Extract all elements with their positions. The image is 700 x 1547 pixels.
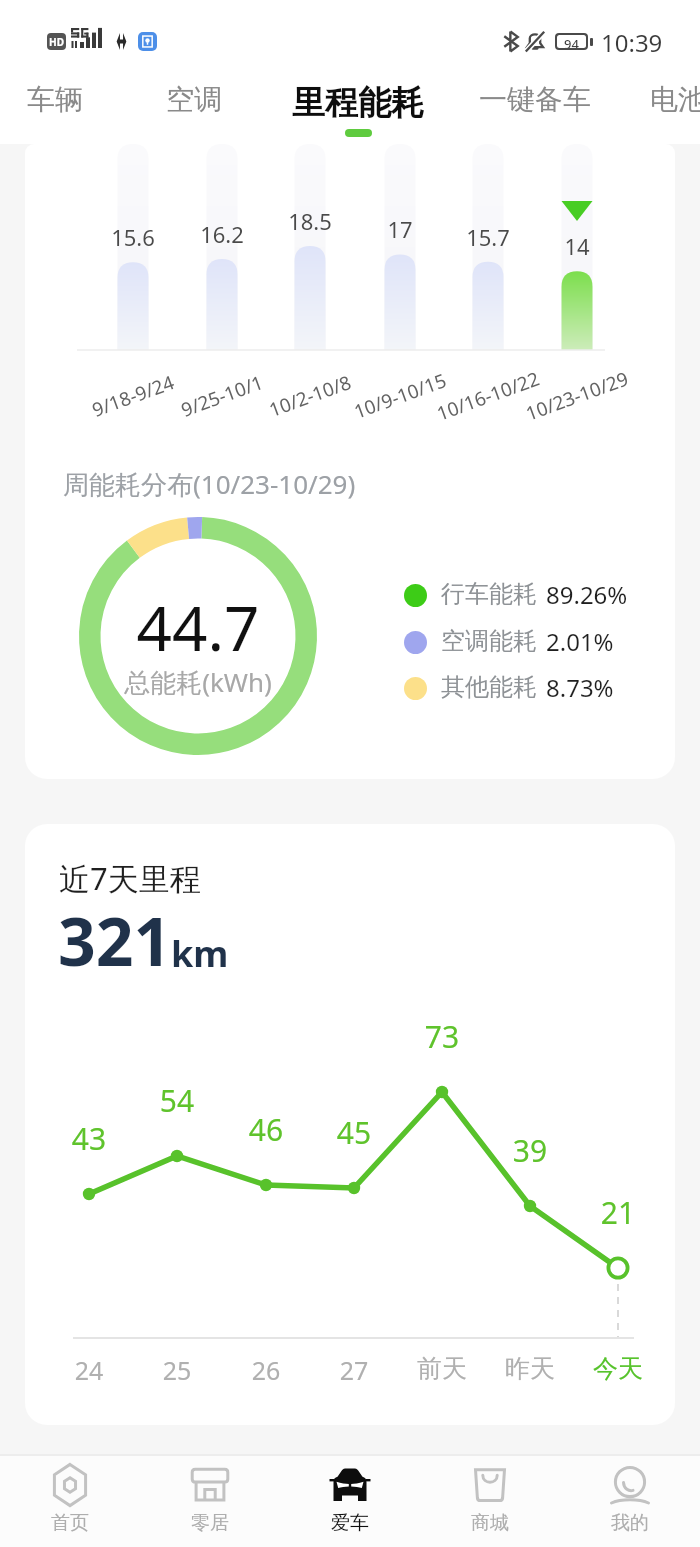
staticText: 电池 (650, 82, 700, 117)
staticText: 8.73% (546, 671, 614, 704)
staticText: 我的 (611, 1511, 649, 1535)
staticText: 行车能耗 (441, 579, 537, 609)
staticText: 近7天里程 (59, 857, 201, 899)
staticText: 94 (564, 35, 579, 48)
staticText: 14 (527, 231, 627, 261)
button[interactable]: Store (140, 1456, 280, 1547)
staticText: 昨天 (480, 1353, 580, 1384)
staticText: 321 (58, 895, 172, 985)
staticText: 总能耗(kWh) (98, 664, 298, 700)
staticText: 43 (39, 1118, 139, 1159)
button[interactable]: 车辆 (0, 78, 117, 144)
staticText: 25 (127, 1353, 227, 1387)
staticText: 10:39 (601, 26, 663, 59)
staticText: 26 (216, 1353, 316, 1387)
button[interactable]: 电池 (616, 78, 700, 144)
staticText: 零居 (191, 1511, 229, 1535)
staticText: 10/23-10/29 (507, 360, 647, 432)
staticText: 9/18-9/24 (63, 360, 203, 432)
staticText: 15.7 (438, 222, 538, 252)
button[interactable]: 里程能耗 (280, 78, 436, 144)
staticText: 21 (568, 1192, 668, 1233)
button[interactable]: 空调 (132, 78, 256, 144)
staticText: 73 (392, 1016, 492, 1057)
staticText: 15.6 (83, 222, 183, 252)
staticText: 爱车 (331, 1511, 369, 1535)
staticText: 54 (127, 1080, 227, 1121)
staticText: 空调能耗 (441, 626, 537, 656)
staticText: 商城 (471, 1511, 509, 1535)
staticText: 10/16-10/22 (418, 360, 558, 432)
staticText: 10/9-10/15 (330, 360, 470, 432)
button[interactable]: Mall (420, 1456, 560, 1547)
staticText: 周能耗分布(10/23-10/29) (63, 466, 356, 502)
staticText: km (171, 929, 229, 978)
staticText: 18.5 (260, 206, 360, 236)
staticText: 16.2 (172, 219, 272, 249)
staticText: 9/25-10/1 (152, 360, 292, 432)
button[interactable]: Home (0, 1456, 140, 1547)
button[interactable]: 一键备车 (473, 78, 597, 144)
staticText: 24 (39, 1353, 139, 1387)
staticText: 17 (350, 214, 450, 244)
staticText: 45 (304, 1112, 404, 1153)
staticText: 一键备车 (479, 82, 591, 117)
staticText: 27 (304, 1353, 404, 1387)
staticText: 空调 (166, 82, 222, 117)
staticText: 里程能耗 (292, 82, 424, 124)
staticText: 首页 (51, 1511, 89, 1535)
staticText: 39 (480, 1130, 580, 1171)
staticText: 2.01% (546, 625, 614, 658)
staticText: 车辆 (27, 82, 83, 117)
staticText: 44.7 (98, 585, 298, 669)
staticText: HD (49, 35, 64, 49)
staticText: 前天 (392, 1353, 492, 1384)
staticText: 其他能耗 (441, 672, 537, 702)
staticText: 89.26% (546, 578, 628, 611)
staticText: 10/2-10/8 (240, 360, 380, 432)
staticText: 46 (216, 1109, 316, 1150)
staticText: 今天 (568, 1353, 668, 1384)
button[interactable]: My Car (280, 1456, 420, 1547)
button[interactable]: Profile (560, 1456, 700, 1547)
